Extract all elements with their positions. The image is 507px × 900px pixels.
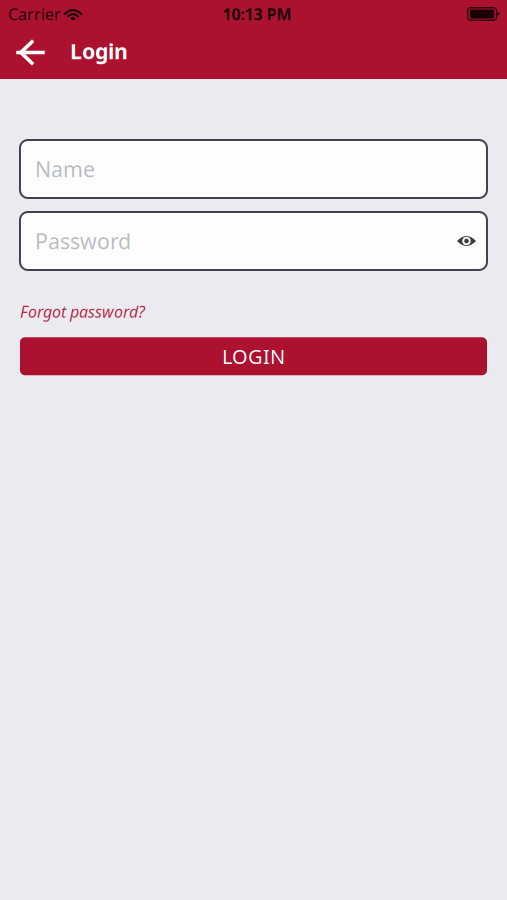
button[interactable]: Name — [20, 140, 487, 198]
button[interactable]: Back — [5, 28, 53, 79]
staticText: Login — [70, 37, 128, 65]
staticText: Carrier — [8, 3, 61, 25]
button[interactable]: Show password — [457, 234, 476, 247]
button[interactable]: LOGIN — [20, 337, 487, 375]
button[interactable]: Password — [20, 212, 487, 270]
staticText: LOGIN — [222, 343, 285, 370]
staticText: Forgot password? — [20, 301, 145, 322]
button[interactable]: Forgot password? — [20, 301, 145, 322]
staticText: 10:13 PM — [222, 3, 291, 25]
staticText: Name — [35, 155, 95, 183]
staticText: Password — [35, 227, 131, 255]
